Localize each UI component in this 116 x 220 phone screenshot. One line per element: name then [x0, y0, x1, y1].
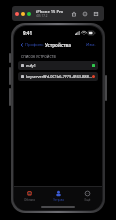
button[interactable]: Изм. [84, 41, 98, 49]
button[interactable]: Ещё [73, 187, 102, 204]
staticText: Изм. [86, 42, 96, 48]
staticText: Устр-ва [53, 198, 64, 202]
button[interactable]: Профиль [18, 41, 46, 49]
staticText: Облако [24, 198, 35, 202]
button[interactable]: Minimize [21, 12, 25, 16]
button[interactable]: Screenshot [92, 10, 100, 18]
staticText: СПИСОК УСТРОЙСТВ [21, 54, 56, 59]
staticText: eufy1 [26, 63, 92, 68]
staticText: Ещё [84, 198, 91, 202]
staticText: iOS 17.2 [36, 14, 48, 18]
staticText: Устройства [45, 42, 71, 48]
button[interactable]: keyserver8fd-0C1b6-7F79-4F43-B88C-D... [18, 72, 98, 81]
button[interactable]: Close [15, 12, 19, 16]
button[interactable]: Home [70, 10, 78, 18]
staticText: iPhone 15 Pro [36, 9, 64, 14]
staticText: 9:41 [23, 30, 32, 36]
button[interactable]: eufy1 [18, 61, 98, 70]
button[interactable]: Облако [14, 187, 44, 204]
staticText: keyserver8fd-0C1b6-7F79-4F43-B88C-D... [26, 74, 92, 79]
staticText: Профиль [25, 42, 44, 48]
button[interactable]: Устр-ва [44, 187, 73, 204]
button[interactable]: Rotate [81, 10, 89, 18]
button[interactable]: Zoom [27, 12, 31, 16]
